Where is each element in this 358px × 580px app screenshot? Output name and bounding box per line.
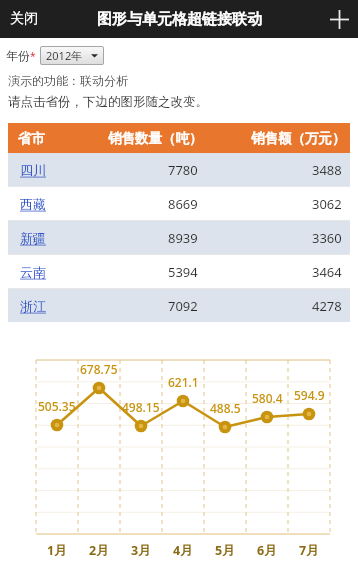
button[interactable]: 四川 [8, 153, 350, 186]
staticText: 关闭 [10, 10, 38, 28]
staticText: 505.35 [38, 398, 76, 414]
button[interactable]: 西藏 [8, 187, 350, 220]
staticText: 3464 [312, 263, 342, 281]
button[interactable]: Add [320, 0, 358, 38]
staticText: 3360 [312, 229, 342, 247]
staticText: 580.4 [252, 390, 283, 406]
staticText: 7780 [168, 161, 198, 179]
staticText: 4278 [312, 297, 342, 315]
staticText: 2月 [89, 542, 109, 559]
button[interactable]: 浙江 [8, 289, 350, 322]
button[interactable]: 关闭 [0, 1, 48, 37]
staticText: 四川 [20, 162, 46, 178]
staticText: 7月 [299, 542, 319, 559]
staticText: 年份 [6, 48, 30, 63]
staticText: 请点击省份，下边的图形随之改变。 [8, 94, 208, 110]
staticText: 498.15 [122, 399, 160, 415]
staticText: 省市 [18, 130, 45, 147]
staticText: 西藏 [20, 196, 46, 212]
staticText: 5月 [215, 542, 235, 559]
staticText: 621.1 [168, 374, 199, 390]
staticText: 488.5 [210, 400, 241, 416]
button[interactable]: 2012年 [40, 46, 104, 65]
button[interactable]: 云南 [8, 255, 350, 288]
staticText: 6月 [257, 542, 277, 559]
staticText: 销售额（万元） [251, 130, 346, 147]
staticText: 3062 [312, 195, 342, 213]
staticText: * [30, 49, 36, 63]
staticText: 4月 [173, 542, 193, 559]
staticText: 678.75 [80, 361, 118, 377]
staticText: 3月 [131, 542, 151, 559]
staticText: 7092 [168, 297, 198, 315]
button[interactable]: 新疆 [8, 221, 350, 254]
staticText: 1月 [47, 542, 67, 559]
staticText: 594.9 [294, 387, 325, 403]
staticText: 演示的功能：联动分析 [8, 73, 128, 88]
staticText: 新疆 [20, 230, 46, 246]
staticText: 销售数量（吨） [108, 130, 203, 147]
staticText: 浙江 [20, 298, 46, 314]
staticText: 2012年 [46, 48, 83, 63]
staticText: 云南 [20, 264, 46, 280]
staticText: 8669 [168, 195, 198, 213]
staticText: 3488 [312, 161, 342, 179]
staticText: 5394 [168, 263, 198, 281]
staticText: 图形与单元格超链接联动 [97, 10, 262, 29]
staticText: 8939 [168, 229, 198, 247]
